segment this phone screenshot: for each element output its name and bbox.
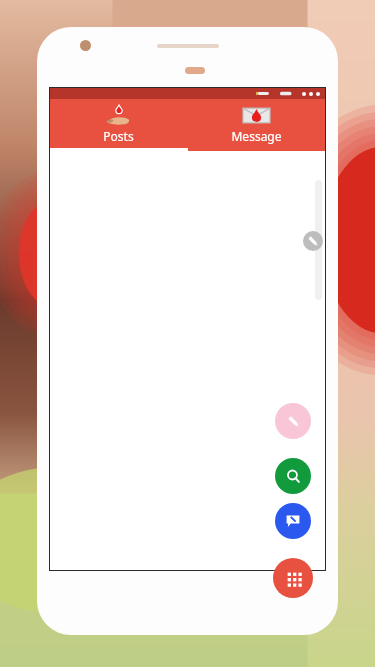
- button[interactable]: Search: [275, 458, 311, 494]
- button[interactable]: Compose: [303, 231, 323, 251]
- staticText: Posts: [103, 128, 134, 144]
- button[interactable]: New message: [275, 503, 311, 539]
- button[interactable]: Edit: [275, 403, 311, 439]
- button[interactable]: Apps: [273, 558, 313, 598]
- button[interactable]: Posts: [50, 99, 187, 151]
- button[interactable]: Message: [187, 99, 325, 151]
- staticText: Message: [231, 128, 282, 144]
